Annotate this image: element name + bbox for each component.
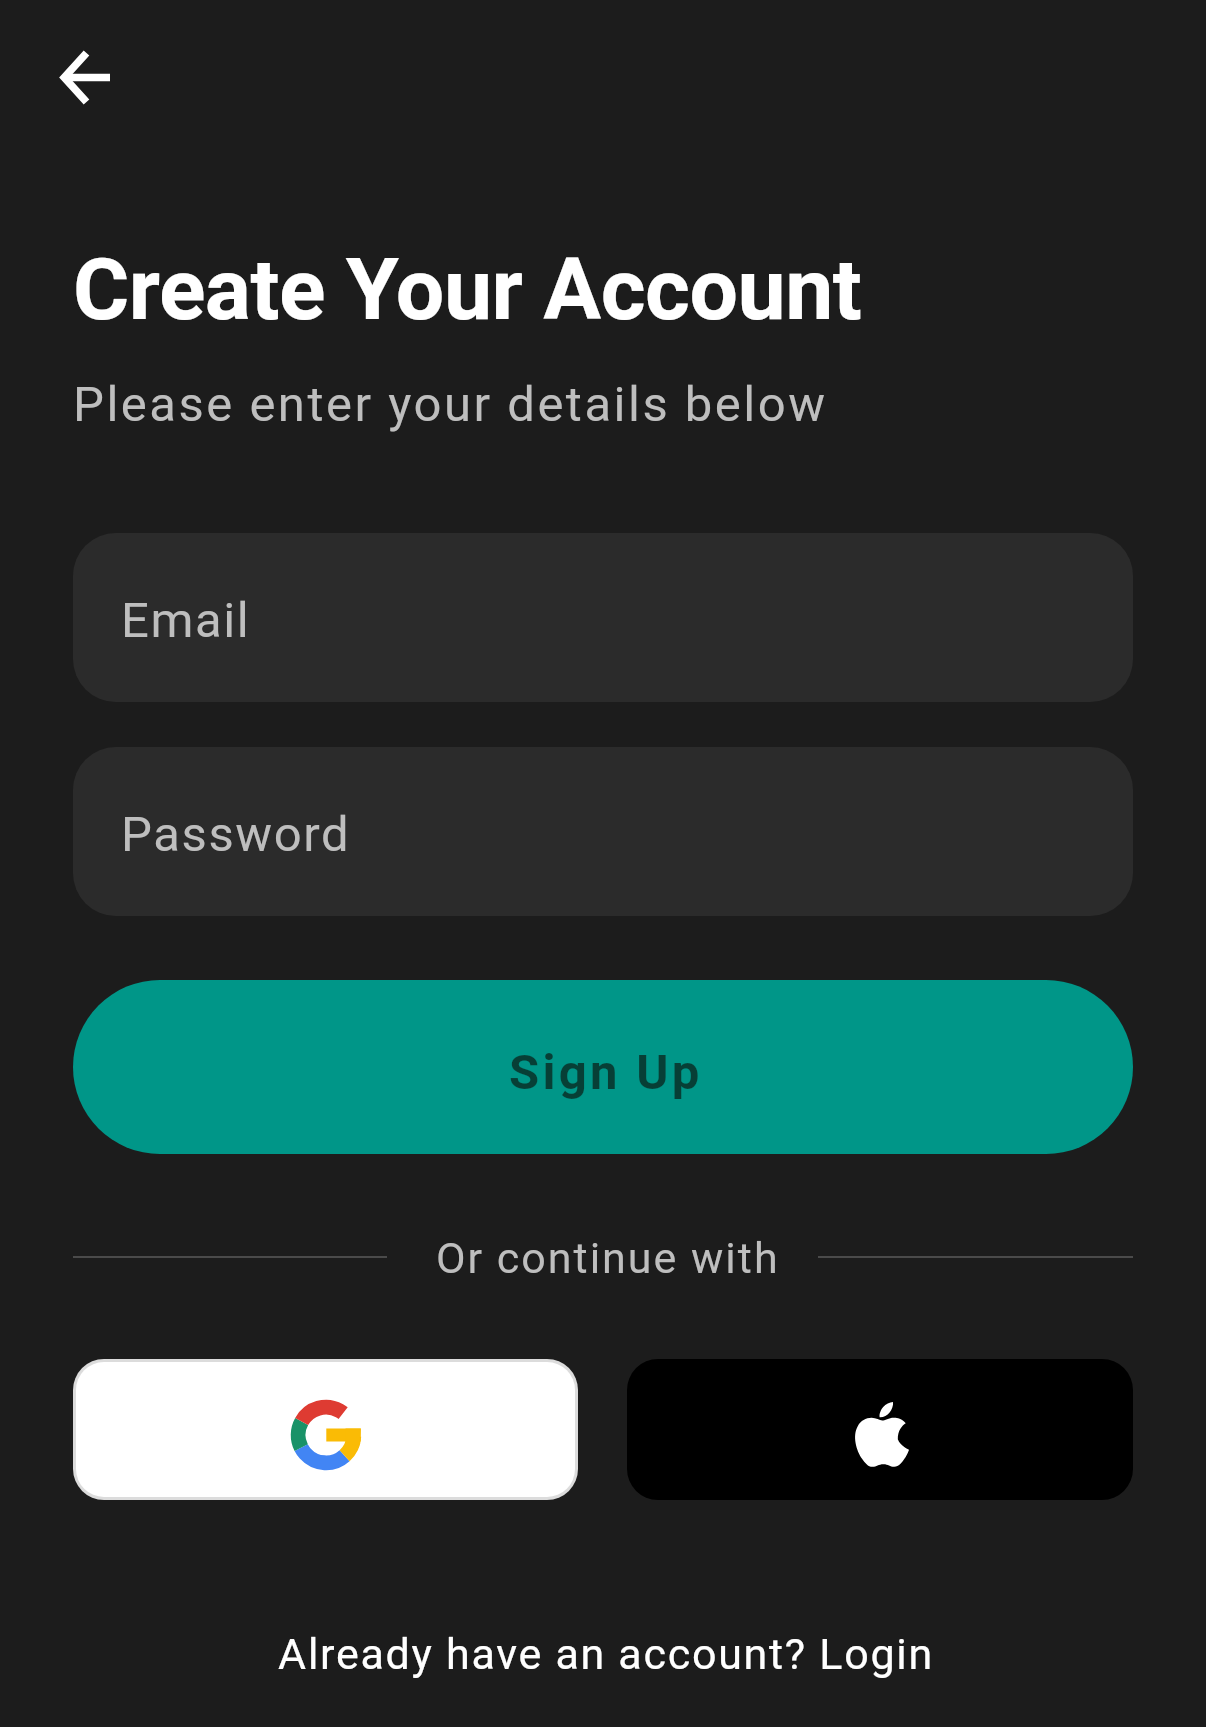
button[interactable]: Password: [73, 747, 1133, 916]
button[interactable]: Already have an account? Login: [278, 1629, 934, 1679]
button[interactable]: Sign up with Apple: [627, 1359, 1133, 1500]
button[interactable]: Sign Up: [73, 980, 1133, 1154]
button[interactable]: Email: [73, 533, 1133, 702]
staticText: Email: [121, 592, 251, 649]
staticText: Or continue with: [436, 1233, 780, 1273]
staticText: Create Your Account: [73, 239, 862, 340]
button[interactable]: Sign up with Google: [76, 1362, 575, 1497]
staticText: Please enter your details below: [73, 376, 828, 433]
staticText: Sign Up: [509, 1044, 703, 1101]
button[interactable]: Back: [38, 29, 134, 125]
staticText: Password: [121, 806, 351, 863]
